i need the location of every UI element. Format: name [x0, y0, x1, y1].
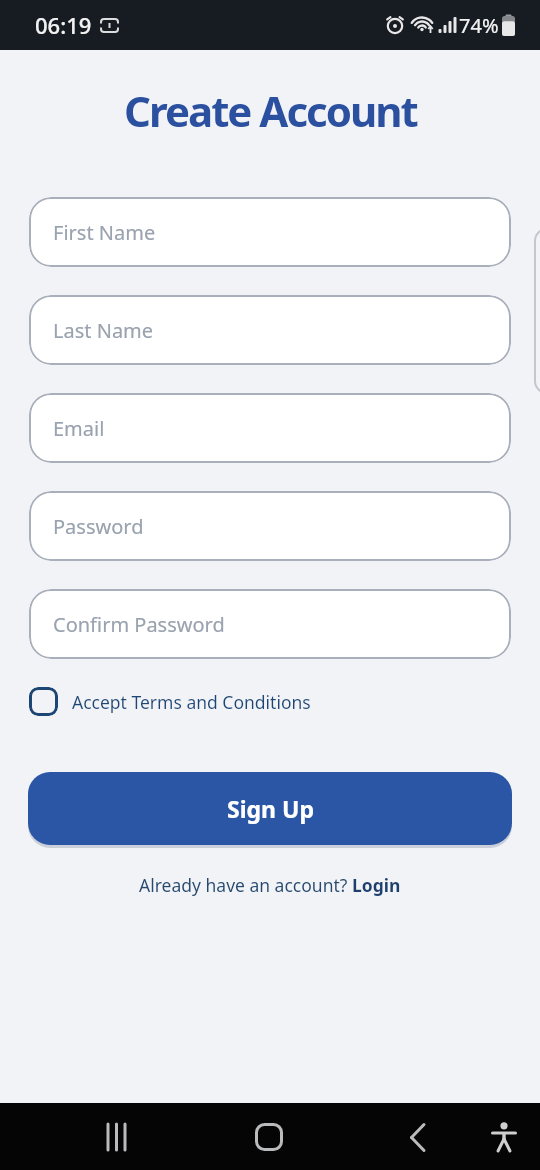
staticText: Create Account [124, 82, 417, 139]
button[interactable] [482, 1115, 526, 1159]
button[interactable]: Password [29, 491, 511, 561]
button[interactable]: Email [29, 393, 511, 463]
button[interactable] [392, 1111, 444, 1163]
staticText: Last Name [53, 317, 154, 344]
staticText: Already have an account? [139, 873, 352, 897]
staticText: Confirm Password [53, 611, 225, 638]
staticText: Sign Up [227, 793, 314, 824]
staticText: Login [352, 873, 401, 897]
button[interactable]: Confirm Password [29, 589, 511, 659]
staticText: First Name [53, 219, 156, 246]
button[interactable]: Last Name [29, 295, 511, 365]
staticText: Email [53, 415, 105, 442]
staticText: 06:19 [35, 10, 92, 40]
staticText: Accept Terms and Conditions [72, 690, 311, 714]
button[interactable]: Sign Up [28, 772, 512, 845]
staticText: Password [53, 513, 144, 540]
button[interactable]: First Name [29, 197, 511, 267]
button[interactable] [243, 1111, 295, 1163]
staticText: 74% [459, 12, 499, 39]
button[interactable]: Already have an account? [0, 873, 540, 897]
button[interactable]: Accept Terms and Conditions [29, 687, 311, 716]
button[interactable] [92, 1111, 144, 1163]
